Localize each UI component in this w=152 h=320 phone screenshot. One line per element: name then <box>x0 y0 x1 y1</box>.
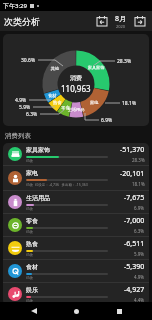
staticText: 28.3% <box>132 157 145 163</box>
staticText: 已收 <box>26 159 33 163</box>
staticText: 次类分析 <box>4 16 40 27</box>
staticText: 6.9% <box>134 205 145 211</box>
staticText: 已收 <box>26 207 33 211</box>
staticText: 熟食 <box>26 240 38 248</box>
staticText: 家电 <box>26 169 38 177</box>
staticText: -7,000 <box>124 216 145 226</box>
staticText: 已收 已设定：-4,736 多出额：-15,363 <box>26 182 88 187</box>
staticText: 生活用品 <box>26 194 50 202</box>
button[interactable]: Previous month <box>94 13 110 29</box>
button[interactable]: 熟食 <box>3 237 149 259</box>
staticText: 6.3% <box>134 228 145 234</box>
staticText: 2020 <box>116 24 126 29</box>
staticText: 已收 <box>26 299 33 303</box>
staticText: 4.9% <box>134 274 145 280</box>
button[interactable]: Next month <box>132 13 148 29</box>
staticText: 已收 <box>26 253 33 257</box>
staticText: -51,370 <box>120 145 145 155</box>
staticText: 已收 <box>26 276 33 280</box>
button[interactable]: 家电 <box>3 166 149 190</box>
staticText: -7,675 <box>124 193 145 203</box>
staticText: 下午3:29 <box>3 2 27 10</box>
button[interactable]: 生活用品 <box>3 191 149 213</box>
staticText: 食材 <box>26 263 38 271</box>
staticText: 18.1% <box>132 181 145 187</box>
staticText: 已收 <box>26 230 33 234</box>
staticText: -20,101 <box>120 169 145 179</box>
button[interactable]: 8月 <box>113 14 129 29</box>
staticText: 8月 <box>115 14 127 24</box>
button[interactable]: Home <box>67 302 85 320</box>
staticText: 零食 <box>26 217 38 225</box>
button[interactable]: 零食 <box>3 214 149 236</box>
staticText: 4.4% <box>134 297 145 303</box>
staticText: 5.9% <box>134 251 145 257</box>
button[interactable]: 食材 <box>3 260 149 282</box>
button[interactable]: Back <box>25 302 43 320</box>
button[interactable]: 娱乐 <box>3 283 149 305</box>
staticText: 娱乐 <box>26 286 38 294</box>
staticText: -4,927 <box>124 285 145 295</box>
button[interactable]: Recents <box>110 302 128 320</box>
staticText: -5,390 <box>124 262 145 272</box>
button[interactable]: 家具家饰 <box>3 143 149 165</box>
staticText: 消费列表 <box>5 132 31 140</box>
staticText: -6,511 <box>124 239 145 249</box>
staticText: 家具家饰 <box>26 146 50 154</box>
